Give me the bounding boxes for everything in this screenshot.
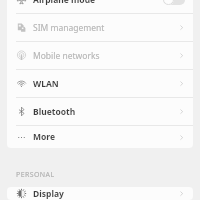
staticText: Mobile networks [33,50,100,62]
staticText: More [33,131,56,143]
button[interactable]: Bluetooth [7,98,193,125]
button[interactable]: Airplane mode toggle [163,0,185,5]
button[interactable]: WLAN [7,70,193,97]
button[interactable]: Airplane mode [7,0,193,13]
button[interactable]: Mobile networks [7,42,193,69]
button[interactable]: SIM management [7,14,193,41]
button[interactable]: Display [7,187,193,200]
staticText: Airplane mode [33,0,96,6]
staticText: WLAN [33,78,59,90]
staticText: PERSONAL [16,170,55,180]
staticText: Display [33,188,64,200]
staticText: Bluetooth [33,106,76,118]
button[interactable]: More [7,126,193,148]
staticText: SIM management [33,22,105,34]
